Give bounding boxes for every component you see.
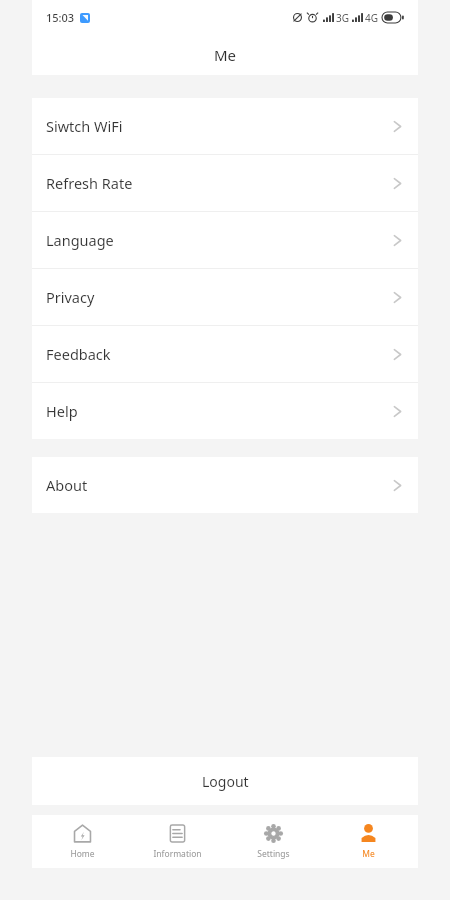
staticText: Logout bbox=[202, 772, 249, 791]
button[interactable]: Refresh Rate bbox=[32, 155, 418, 211]
staticText: Information bbox=[153, 848, 202, 860]
staticText: Siwtch WiFi bbox=[46, 116, 393, 136]
button[interactable]: Me bbox=[323, 815, 413, 868]
staticText: 15:03 bbox=[46, 10, 75, 25]
staticText: Refresh Rate bbox=[46, 173, 393, 193]
button[interactable]: Feedback bbox=[32, 326, 418, 382]
staticText: Help bbox=[46, 401, 393, 421]
staticText: Me bbox=[362, 848, 375, 860]
button[interactable]: Home bbox=[37, 815, 127, 868]
staticText: Language bbox=[46, 230, 393, 250]
staticText: Settings bbox=[257, 848, 290, 860]
staticText: 4G bbox=[365, 11, 378, 25]
staticText: Home bbox=[70, 848, 95, 860]
button[interactable]: Privacy bbox=[32, 269, 418, 325]
button[interactable]: Language bbox=[32, 212, 418, 268]
button[interactable]: Information bbox=[132, 815, 222, 868]
staticText: 3G bbox=[336, 11, 349, 25]
button[interactable]: Siwtch WiFi bbox=[32, 98, 418, 154]
staticText: Me bbox=[214, 45, 237, 65]
button[interactable]: Logout bbox=[32, 757, 418, 805]
staticText: Privacy bbox=[46, 287, 393, 307]
staticText: Feedback bbox=[46, 344, 393, 364]
button[interactable]: Settings bbox=[228, 815, 318, 868]
button[interactable]: Help bbox=[32, 383, 418, 439]
staticText: About bbox=[46, 475, 393, 495]
button[interactable]: About bbox=[32, 457, 418, 513]
